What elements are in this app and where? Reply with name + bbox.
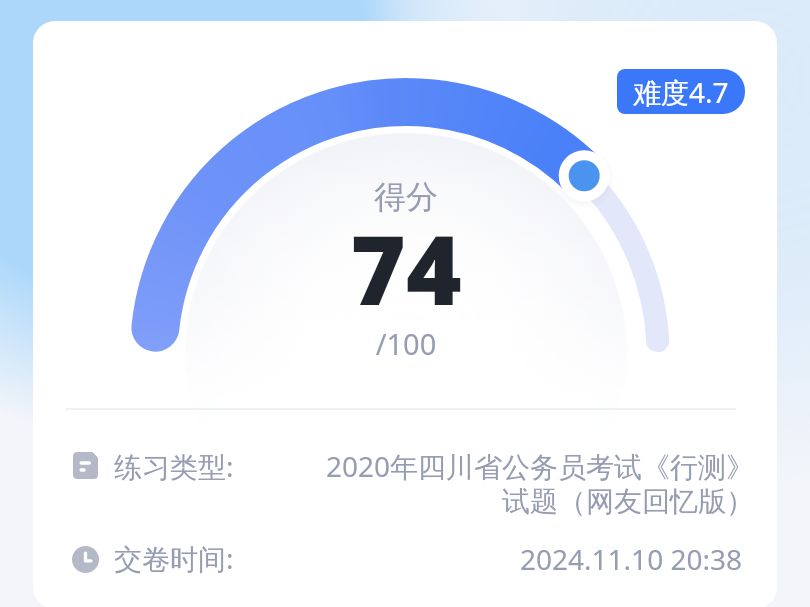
staticText: 得分 — [206, 177, 606, 217]
staticText: 练习类型: — [114, 447, 234, 485]
staticText: 2024.11.10 20:38 — [400, 540, 742, 578]
button[interactable]: 难度4.7 — [617, 69, 745, 114]
staticText: 交卷时间: — [114, 539, 234, 577]
staticText: 74 — [206, 203, 606, 332]
staticText: /100 — [206, 324, 606, 363]
button[interactable]: Score 74 out of 100 — [130, 78, 682, 378]
staticText: 2020年四川省公务员考试《行测》试题（网友回忆版） — [313, 447, 754, 520]
other: Practice type — [73, 452, 98, 479]
other: Submission time — [72, 546, 99, 573]
button[interactable] — [66, 430, 742, 530]
staticText: 难度4.7 — [633, 73, 729, 111]
button[interactable] — [66, 533, 742, 589]
